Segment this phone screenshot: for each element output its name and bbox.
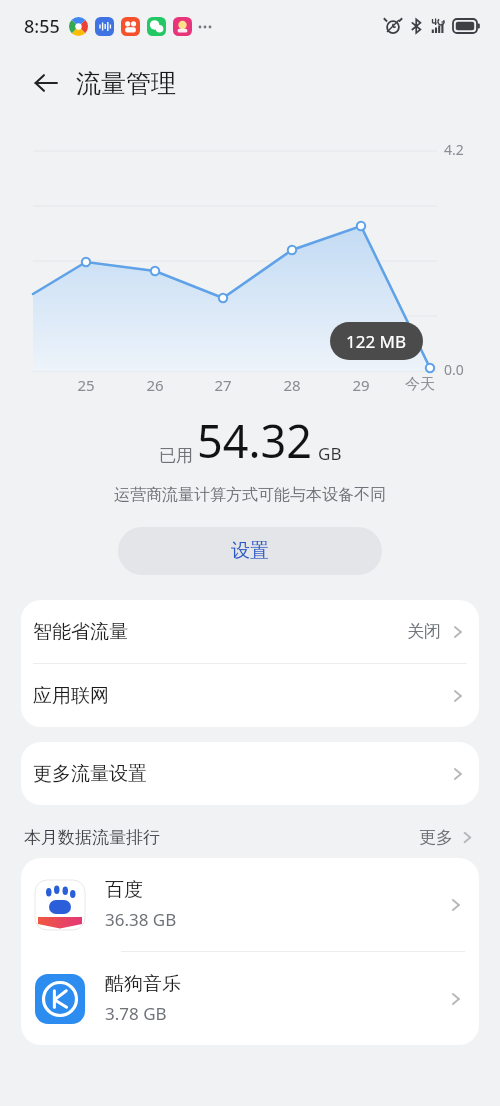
button[interactable]: 百度	[21, 858, 479, 952]
staticText: 28	[283, 375, 301, 395]
staticText: GB	[318, 442, 342, 465]
staticText: 百度	[105, 878, 143, 902]
staticText: 更多流量设置	[33, 762, 147, 786]
staticText: 智能省流量	[33, 620, 128, 644]
staticText: 更多	[419, 827, 453, 848]
staticText: 26	[146, 375, 164, 395]
button[interactable]: Back	[22, 59, 70, 107]
staticText: 4.2	[444, 140, 464, 159]
staticText: 54.32	[197, 410, 313, 471]
staticText: 关闭	[407, 621, 441, 642]
button[interactable]: 酷狗音乐	[21, 952, 479, 1045]
staticText: 3.78 GB	[105, 1002, 167, 1025]
staticText: 29	[352, 375, 370, 395]
staticText: 运营商流量计算方式可能与本设备不同	[114, 485, 386, 505]
staticText: 今天	[405, 375, 435, 394]
staticText: 122 MB	[346, 330, 407, 353]
button[interactable]: 更多	[419, 827, 476, 848]
staticText: 8:55	[24, 14, 60, 39]
staticText: 27	[214, 375, 232, 395]
button[interactable]: 智能省流量	[21, 600, 479, 664]
button[interactable]: 应用联网	[21, 664, 479, 727]
staticText: 设置	[231, 539, 269, 563]
button[interactable]: 更多流量设置	[21, 742, 479, 805]
staticText: 36.38 GB	[105, 908, 177, 931]
button[interactable]: 设置	[118, 527, 382, 575]
staticText: 应用联网	[33, 684, 109, 708]
staticText: 25	[77, 375, 95, 395]
staticText: 0.0	[444, 360, 464, 379]
staticText: 已用	[159, 445, 193, 466]
staticText: 本月数据流量排行	[24, 827, 160, 848]
staticText: 流量管理	[76, 68, 176, 99]
staticText: 酷狗音乐	[105, 972, 181, 996]
